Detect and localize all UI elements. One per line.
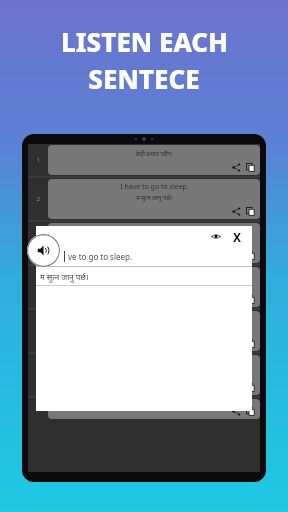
staticText: 4 — [37, 284, 40, 291]
button[interactable]: Share — [231, 206, 242, 217]
button[interactable]: Share — [231, 406, 242, 417]
button[interactable]: 5 — [28, 310, 260, 352]
staticText: SENTECE — [88, 61, 200, 96]
staticText: म सुत्न जानु पर्छ। — [136, 194, 173, 202]
button[interactable]: Copy — [245, 338, 256, 349]
staticText: LISTEN EACH — [61, 24, 228, 59]
button[interactable]: 1 — [28, 144, 260, 176]
staticText: This is never going to end. — [111, 402, 198, 412]
staticText: 2 — [37, 196, 40, 203]
button[interactable]: Copy — [245, 382, 256, 393]
staticText: मलाई सोच्न दिनुहोस्। — [131, 282, 177, 290]
button[interactable]: Copy — [245, 250, 256, 261]
staticText: X — [233, 229, 242, 243]
staticText: ve to go to sleep. — [68, 251, 133, 262]
staticText: केही प्रभाव पर्दैन। — [135, 150, 173, 158]
button[interactable]: Copy — [245, 294, 256, 305]
button[interactable]: 7 — [28, 398, 260, 420]
staticText: 7 — [37, 406, 40, 413]
button[interactable]: 6 — [28, 354, 260, 396]
button[interactable]: Copy — [245, 406, 256, 417]
staticText: 1 — [37, 157, 40, 164]
staticText: I have to go to sleep. — [120, 182, 189, 192]
button[interactable]: Copy — [245, 206, 256, 217]
button[interactable]: Play audio — [27, 234, 60, 267]
button[interactable]: Show — [209, 229, 223, 243]
button[interactable]: Copy — [245, 162, 256, 173]
staticText: म सुत्न जानु पर्छ। — [40, 271, 89, 282]
button[interactable]: Close — [230, 229, 244, 243]
button[interactable]: 4 — [28, 266, 260, 308]
button[interactable]: 2 — [28, 178, 260, 220]
button[interactable]: Share — [231, 162, 242, 173]
button[interactable]: 3 — [28, 222, 260, 264]
